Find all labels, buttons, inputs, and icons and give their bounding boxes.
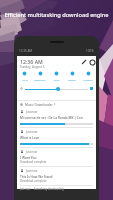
staticText: 12:36 AM [19, 49, 33, 53]
staticText: Music Downloader [25, 103, 53, 107]
staticText: I Want You [20, 156, 37, 160]
staticText: Mi sonrisa de ver : De La Ronda MK | Con… [20, 116, 93, 120]
staticText: Rotate [68, 78, 76, 81]
button[interactable]: Just now [20, 108, 93, 127]
button[interactable]: Location [80, 71, 96, 81]
button[interactable]: Wi-Fi [17, 71, 32, 81]
button[interactable]: Just now [20, 148, 93, 166]
staticText: What is Love [20, 136, 40, 140]
button[interactable]: Music Downloader [20, 101, 93, 108]
button[interactable]: Just now [20, 167, 93, 185]
staticText: Location [83, 78, 93, 81]
staticText: Wi-Fi [22, 78, 28, 81]
staticText: ▾ [54, 103, 56, 106]
staticText: Just now [26, 150, 38, 154]
staticText: 100% [86, 49, 94, 53]
staticText: Bluetooth [34, 78, 46, 81]
staticText: Sunday, August 5 [20, 65, 45, 69]
button[interactable]: Torch [48, 71, 64, 81]
staticText: 12:36 AM [20, 58, 43, 65]
button[interactable]: Edit [80, 58, 88, 66]
staticText: Just now [26, 110, 38, 114]
staticText: Download complete [20, 160, 47, 164]
staticText: Torch [53, 78, 60, 81]
staticText: Just now · Something downloading [20, 187, 64, 191]
staticText: Just now [26, 169, 38, 173]
staticText: Download complete [20, 179, 47, 183]
button[interactable]: Just now [20, 128, 93, 147]
button[interactable]: Settings [88, 58, 96, 66]
staticText: This Is How We Stand [20, 175, 53, 179]
button[interactable]: Bluetooth [32, 71, 48, 81]
button[interactable]: Rotate [64, 71, 80, 81]
staticText: Just now [26, 130, 38, 134]
staticText: Efficient multitasking download engine [0, 11, 113, 19]
